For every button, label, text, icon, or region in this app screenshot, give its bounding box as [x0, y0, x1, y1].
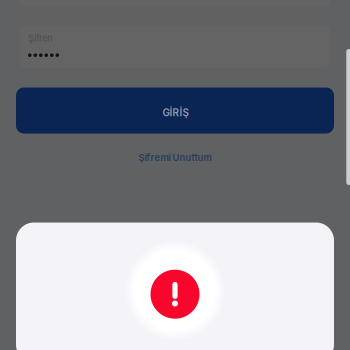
button[interactable]: GİRİŞ — [16, 87, 334, 133]
button[interactable]: Şifremi Unuttum — [105, 147, 245, 167]
staticText: GİRİŞ — [162, 106, 189, 119]
staticText: Şifren — [28, 32, 53, 44]
staticText: Şifremi Unuttum — [138, 152, 211, 163]
button[interactable]: Şifren — [20, 26, 330, 68]
